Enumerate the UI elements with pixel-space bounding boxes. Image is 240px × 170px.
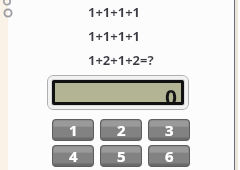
staticText: 3 — [165, 120, 174, 140]
staticText: 1+1+1+1 — [88, 27, 141, 45]
staticText: 0 — [165, 83, 178, 102]
staticText: 1+2+1+2=? — [88, 51, 154, 69]
staticText: 1 — [69, 120, 78, 140]
staticText: 1+1+1+1 — [88, 3, 141, 21]
staticText: 6 — [165, 146, 174, 166]
button[interactable]: 0 — [51, 79, 185, 106]
button[interactable]: Key 6 — [148, 145, 190, 167]
button[interactable]: Key 2 — [100, 119, 142, 141]
button[interactable]: Key 5 — [100, 145, 142, 167]
staticText: 5 — [117, 146, 126, 166]
button[interactable]: Key 3 — [148, 119, 190, 141]
staticText: 2 — [117, 120, 126, 140]
button[interactable]: Key 1 — [52, 119, 94, 141]
staticText: 4 — [69, 146, 78, 166]
button[interactable]: Key 4 — [52, 145, 94, 167]
